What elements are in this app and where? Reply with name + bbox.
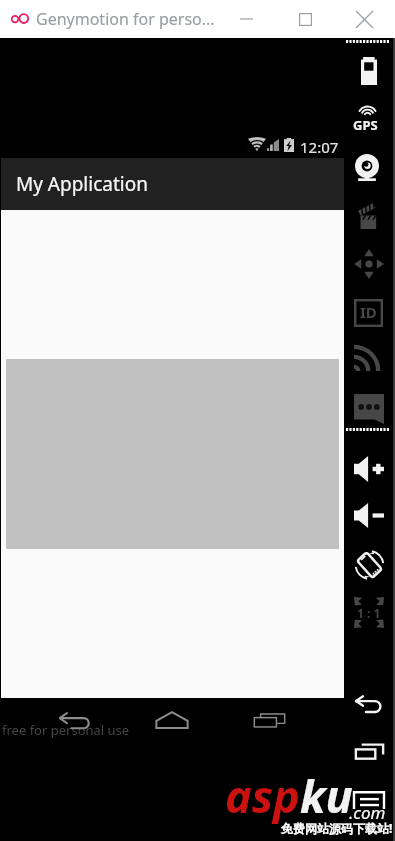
button[interactable]: Volume down bbox=[345, 498, 393, 532]
staticText: asp bbox=[225, 765, 300, 826]
button[interactable]: Recents bbox=[345, 734, 393, 768]
button[interactable]: Back bbox=[345, 687, 393, 721]
staticText: ku bbox=[300, 765, 353, 826]
button[interactable]: Battery bbox=[345, 54, 393, 88]
button[interactable]: Identifiers bbox=[354, 299, 383, 327]
staticText: free for personal use bbox=[2, 721, 130, 739]
button[interactable]: Camera bbox=[343, 150, 391, 184]
staticText: 12:07 bbox=[300, 137, 339, 157]
staticText: .com bbox=[349, 801, 386, 824]
button[interactable]: Maximize bbox=[276, 0, 334, 38]
button[interactable]: SMS bbox=[345, 392, 393, 426]
button[interactable]: Network bbox=[342, 341, 390, 375]
button[interactable]: Back bbox=[47, 703, 101, 739]
button[interactable]: Accelerometer bbox=[345, 247, 393, 281]
button[interactable]: Scale 1 to 1 bbox=[354, 597, 384, 628]
button[interactable]: Recents bbox=[242, 702, 296, 738]
button[interactable]: Close bbox=[335, 0, 393, 38]
staticText: 免费网站源码下载站! bbox=[281, 820, 393, 836]
button[interactable]: Volume up bbox=[345, 452, 393, 486]
staticText: 1 : 1 bbox=[357, 605, 381, 621]
staticText: My Application bbox=[16, 171, 148, 197]
staticText: Genymotion for perso... bbox=[36, 8, 215, 30]
staticText: GPS bbox=[353, 116, 378, 134]
button[interactable]: Minimize bbox=[217, 0, 275, 38]
button[interactable]: Home bbox=[145, 702, 199, 738]
staticText: ID bbox=[360, 302, 377, 322]
button[interactable]: Video recording bbox=[346, 198, 394, 232]
button[interactable]: GPS bbox=[345, 100, 393, 134]
button[interactable]: Rotate bbox=[345, 548, 393, 582]
